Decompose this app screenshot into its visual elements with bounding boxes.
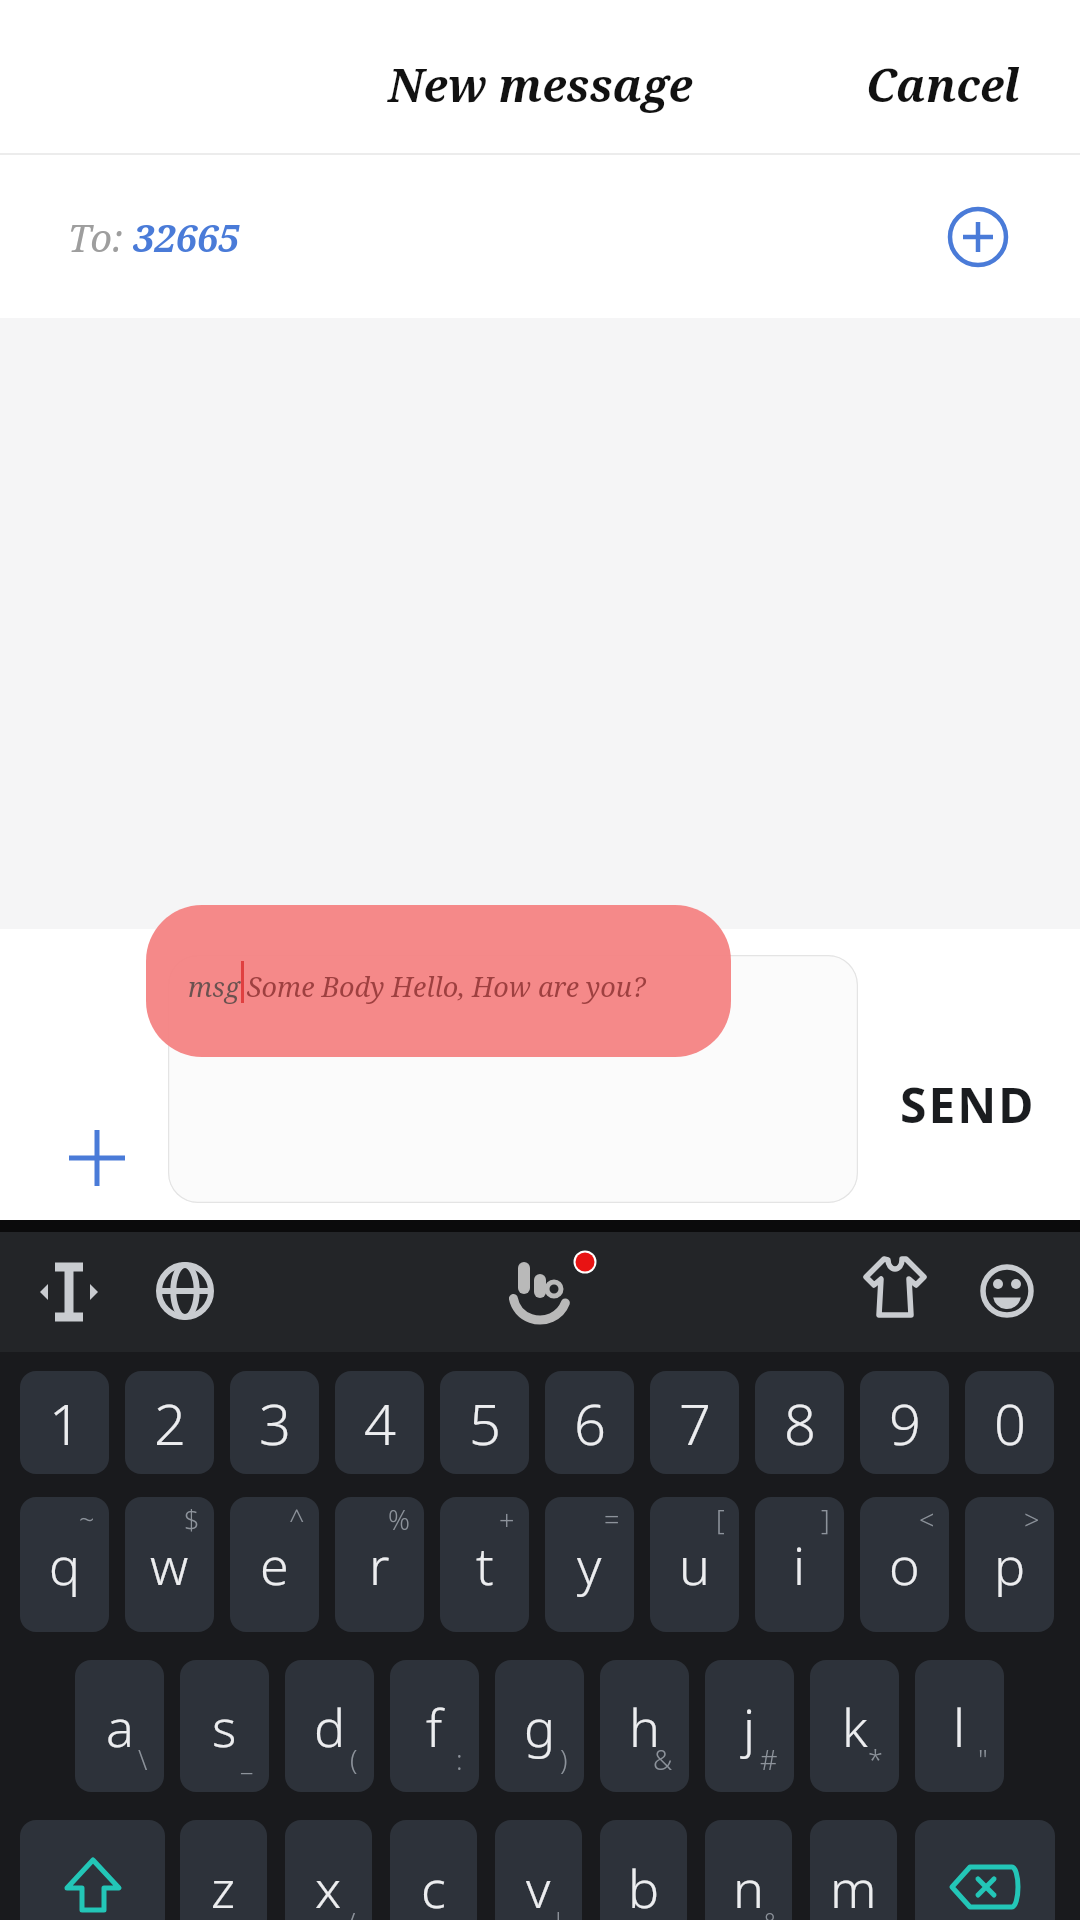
button[interactable]: v bbox=[495, 1820, 582, 1920]
staticText: 4 bbox=[364, 1385, 396, 1461]
staticText: m bbox=[830, 1852, 877, 1920]
staticText: h bbox=[629, 1691, 660, 1762]
button[interactable] bbox=[915, 1820, 1055, 1920]
button[interactable]: To: bbox=[0, 155, 1080, 318]
staticText: 32665 bbox=[133, 211, 240, 263]
button[interactable]: p bbox=[965, 1497, 1054, 1632]
staticText: 3 bbox=[259, 1385, 291, 1461]
staticText: 5 bbox=[469, 1385, 501, 1461]
staticText: > bbox=[1024, 1501, 1040, 1538]
staticText: u bbox=[679, 1529, 710, 1600]
staticText: 9 bbox=[889, 1385, 921, 1461]
button[interactable]: 5 bbox=[440, 1371, 529, 1474]
button[interactable]: f bbox=[390, 1660, 479, 1792]
button[interactable]: j bbox=[705, 1660, 794, 1792]
button[interactable]: SEND bbox=[900, 1072, 1036, 1137]
button[interactable]: 9 bbox=[860, 1371, 949, 1474]
staticText: b bbox=[628, 1852, 660, 1920]
staticText: x bbox=[315, 1852, 342, 1920]
staticText: \ bbox=[138, 1741, 148, 1778]
button[interactable]: s bbox=[180, 1660, 269, 1792]
button[interactable]: Cancel bbox=[866, 54, 1020, 115]
button[interactable]: a bbox=[75, 1660, 164, 1792]
staticText: ^ bbox=[289, 1501, 305, 1538]
button[interactable]: i bbox=[755, 1497, 844, 1632]
staticText: f bbox=[426, 1691, 443, 1762]
button[interactable] bbox=[20, 1820, 165, 1920]
staticText: n bbox=[733, 1852, 764, 1920]
button[interactable]: 4 bbox=[335, 1371, 424, 1474]
button[interactable] bbox=[500, 1252, 600, 1332]
staticText: & bbox=[653, 1741, 673, 1778]
staticText: 0 bbox=[994, 1385, 1026, 1461]
button[interactable]: 3 bbox=[230, 1371, 319, 1474]
staticText: a bbox=[106, 1691, 134, 1762]
staticText: l bbox=[953, 1691, 966, 1762]
staticText: $ bbox=[184, 1501, 200, 1538]
button[interactable] bbox=[156, 1262, 214, 1320]
button[interactable] bbox=[67, 1128, 127, 1188]
staticText: r bbox=[369, 1529, 390, 1600]
button[interactable]: n bbox=[705, 1820, 792, 1920]
button[interactable]: h bbox=[600, 1660, 689, 1792]
staticText: 8 bbox=[784, 1385, 816, 1461]
button[interactable]: 7 bbox=[650, 1371, 739, 1474]
staticText: / bbox=[346, 1904, 356, 1920]
staticText: w bbox=[150, 1529, 189, 1600]
staticText: To: bbox=[68, 211, 133, 263]
button[interactable] bbox=[864, 1257, 926, 1319]
button[interactable]: 6 bbox=[545, 1371, 634, 1474]
button[interactable]: k bbox=[810, 1660, 899, 1792]
staticText: New message bbox=[388, 54, 693, 115]
staticText: | bbox=[551, 1904, 566, 1920]
button[interactable]: d bbox=[285, 1660, 374, 1792]
button[interactable] bbox=[978, 1262, 1036, 1320]
staticText: 2 bbox=[154, 1385, 186, 1461]
staticText: 7 bbox=[679, 1385, 711, 1461]
staticText: " bbox=[978, 1741, 988, 1778]
staticText: j bbox=[743, 1691, 756, 1762]
button[interactable]: 2 bbox=[125, 1371, 214, 1474]
button[interactable]: g bbox=[495, 1660, 584, 1792]
staticText: 1 bbox=[49, 1385, 81, 1461]
button[interactable]: b bbox=[600, 1820, 687, 1920]
staticText: [ bbox=[716, 1501, 725, 1538]
button[interactable]: 0 bbox=[965, 1371, 1054, 1474]
button[interactable] bbox=[948, 207, 1008, 267]
staticText: msg Some Body Hello, How are you? bbox=[188, 968, 646, 1005]
staticText: p bbox=[994, 1529, 1026, 1600]
button[interactable]: e bbox=[230, 1497, 319, 1632]
staticText: ( bbox=[350, 1741, 358, 1778]
button[interactable]: c bbox=[390, 1820, 477, 1920]
button[interactable]: t bbox=[440, 1497, 529, 1632]
button[interactable]: m bbox=[810, 1820, 897, 1920]
staticText: + bbox=[499, 1501, 515, 1538]
staticText: v bbox=[526, 1852, 551, 1920]
button[interactable]: z bbox=[180, 1820, 267, 1920]
button[interactable]: w bbox=[125, 1497, 214, 1632]
staticText: c bbox=[421, 1852, 446, 1920]
staticText: ° bbox=[764, 1904, 776, 1920]
staticText: # bbox=[760, 1741, 778, 1778]
button[interactable]: 1 bbox=[20, 1371, 109, 1474]
staticText: ) bbox=[560, 1741, 568, 1778]
staticText: z bbox=[211, 1852, 236, 1920]
button[interactable]: y bbox=[545, 1497, 634, 1632]
staticText: i bbox=[793, 1529, 806, 1600]
staticText: ~ bbox=[79, 1501, 95, 1538]
button[interactable]: q bbox=[20, 1497, 109, 1632]
staticText: : bbox=[456, 1741, 463, 1778]
staticText: * bbox=[868, 1741, 883, 1778]
staticText: ] bbox=[821, 1501, 830, 1538]
button[interactable]: u bbox=[650, 1497, 739, 1632]
button[interactable]: o bbox=[860, 1497, 949, 1632]
staticText: _ bbox=[241, 1741, 253, 1778]
staticText: q bbox=[49, 1529, 81, 1600]
button[interactable]: x bbox=[285, 1820, 372, 1920]
staticText: 6 bbox=[574, 1385, 606, 1461]
staticText: = bbox=[604, 1501, 620, 1538]
button[interactable] bbox=[40, 1262, 98, 1322]
button[interactable]: l bbox=[915, 1660, 1004, 1792]
button[interactable]: 8 bbox=[755, 1371, 844, 1474]
button[interactable]: r bbox=[335, 1497, 424, 1632]
